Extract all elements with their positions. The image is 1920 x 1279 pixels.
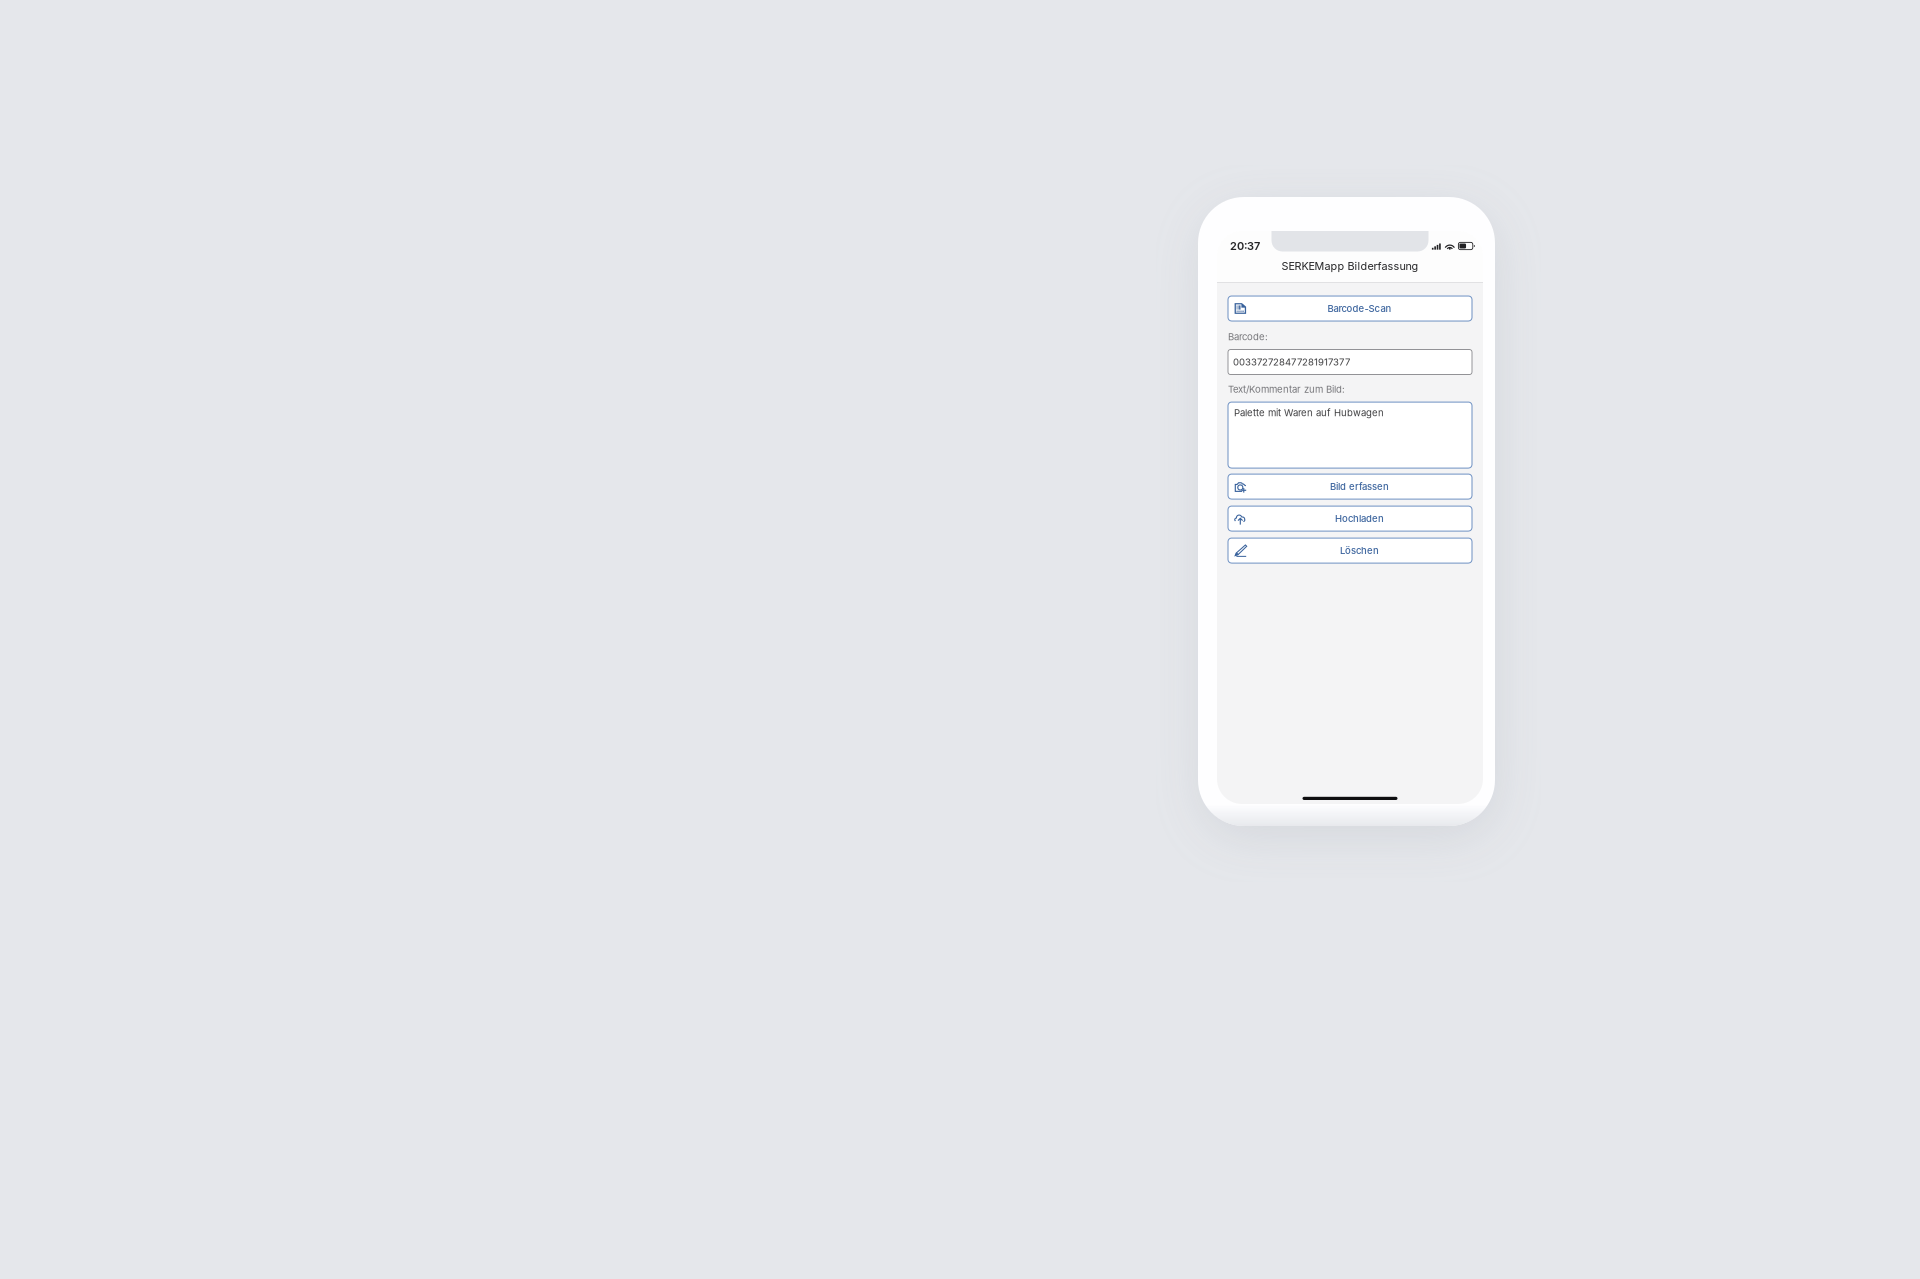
- button[interactable]: 003372728477281917377: [1228, 349, 1472, 374]
- button[interactable]: Löschen: [1228, 538, 1472, 563]
- staticText: Palette mit Waren auf Hubwagen: [1234, 407, 1384, 419]
- staticText: Bild erfassen: [1330, 481, 1389, 492]
- staticText: Barcode:: [1228, 331, 1268, 342]
- staticText: 20:37: [1230, 239, 1260, 253]
- button[interactable]: Bild erfassen: [1228, 474, 1472, 499]
- staticText: Löschen: [1340, 545, 1379, 556]
- staticText: SERKEMapp Bilderfassung: [1281, 259, 1418, 273]
- button[interactable]: Hochladen: [1228, 506, 1472, 531]
- button[interactable]: Palette mit Waren auf Hubwagen: [1228, 402, 1472, 468]
- staticText: Hochladen: [1335, 513, 1384, 524]
- staticText: Barcode-Scan: [1327, 303, 1391, 314]
- staticText: Text/Kommentar zum Bild:: [1228, 383, 1345, 395]
- button[interactable]: Barcode-Scan: [1228, 296, 1472, 321]
- staticText: 003372728477281917377: [1233, 356, 1350, 368]
